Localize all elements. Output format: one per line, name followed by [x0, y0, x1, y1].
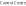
staticText: Control Centre [0, 0, 26, 5]
